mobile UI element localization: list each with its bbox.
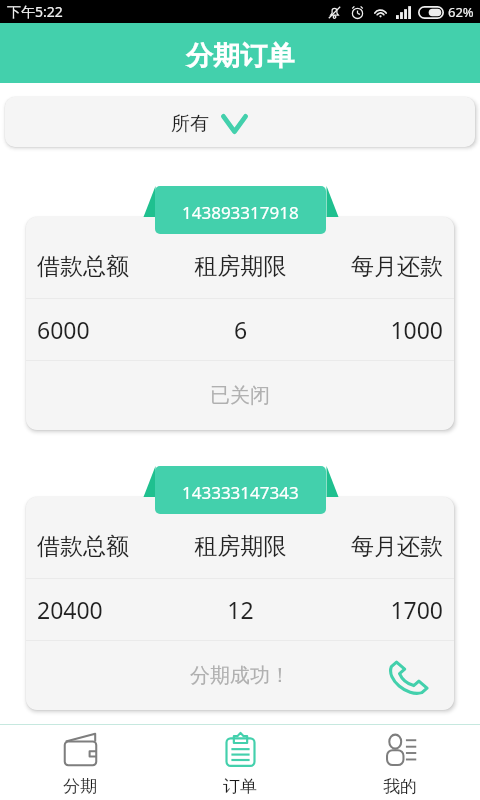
staticText: 每月还款 — [308, 532, 443, 561]
staticText: 143333147343 — [182, 481, 299, 504]
staticText: 每月还款 — [308, 252, 443, 281]
button[interactable]: Call — [382, 651, 438, 701]
button[interactable]: 我的 — [320, 729, 480, 797]
staticText: 下午5:22 — [7, 2, 63, 21]
staticText: 分期订单 — [186, 39, 294, 73]
staticText: 所有 — [171, 112, 209, 136]
button[interactable]: 借款总额 — [26, 497, 454, 710]
staticText: 143893317918 — [182, 201, 299, 224]
staticText: 6 — [173, 314, 308, 345]
staticText: 1000 — [308, 314, 443, 345]
staticText: 分期 — [63, 776, 97, 797]
staticText: 借款总额 — [37, 532, 173, 561]
button[interactable]: 订单 — [160, 729, 320, 797]
staticText: 12 — [173, 594, 308, 625]
button[interactable]: 借款总额 — [26, 217, 454, 430]
staticText: 已关闭 — [210, 383, 270, 408]
button[interactable]: 分期 — [0, 729, 160, 797]
staticText: 订单 — [223, 776, 257, 797]
button[interactable]: 所有 — [5, 97, 475, 147]
staticText: 1700 — [308, 594, 443, 625]
staticText: 租房期限 — [173, 532, 308, 561]
staticText: 分期成功！ — [190, 663, 290, 688]
staticText: 借款总额 — [37, 252, 173, 281]
staticText: 租房期限 — [173, 252, 308, 281]
staticText: 62% — [448, 3, 474, 21]
staticText: 我的 — [383, 776, 417, 797]
staticText: 6000 — [37, 314, 173, 345]
staticText: 20400 — [37, 594, 173, 625]
